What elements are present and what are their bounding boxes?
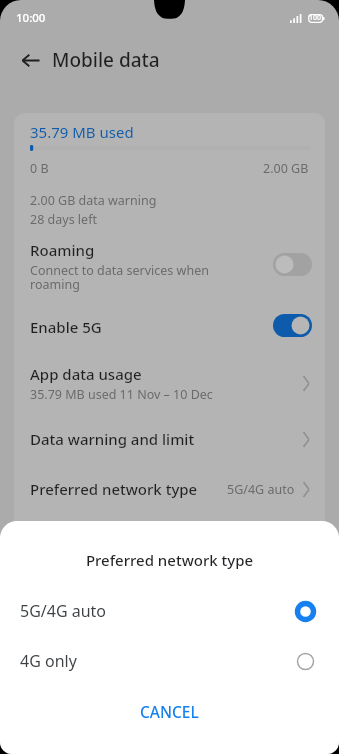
button[interactable]: 4G only (0, 644, 339, 678)
staticText: 28 days left (30, 211, 97, 228)
staticText: 5G/4G auto (227, 481, 295, 498)
staticText: Roaming (30, 240, 95, 260)
staticText: 2.00 GB (263, 160, 309, 177)
staticText: App data usage (30, 364, 142, 384)
button[interactable]: App data usage (14, 357, 325, 401)
staticText: 4G only (20, 650, 296, 672)
staticText: Preferred network type (30, 479, 198, 499)
staticText: 2.00 GB data warning (30, 192, 157, 209)
staticText: 35.79 MB used 11 Nov – 10 Dec (30, 386, 213, 403)
staticText: Connect to data services when roaming (30, 262, 209, 293)
staticText: Enable 5G (30, 317, 102, 337)
button[interactable]: Back (16, 46, 44, 74)
staticText: 35.79 MB used (30, 122, 134, 142)
staticText: 5G/4G auto (20, 600, 296, 622)
button[interactable]: Roaming (14, 232, 325, 288)
button[interactable]: Enable 5G (14, 308, 325, 346)
button[interactable]: Preferred network type (14, 470, 325, 508)
button[interactable]: Data warning and limit (14, 420, 325, 458)
staticText: 0 B (30, 160, 49, 177)
staticText: Data warning and limit (30, 429, 195, 449)
button[interactable]: CANCEL (0, 696, 339, 726)
staticText: 100 (309, 13, 322, 23)
staticText: Preferred network type (0, 550, 339, 570)
staticText: Mobile data (52, 47, 160, 73)
staticText: CANCEL (140, 701, 199, 722)
button[interactable]: 5G/4G auto (0, 594, 339, 628)
staticText: 10:00 (16, 10, 46, 26)
